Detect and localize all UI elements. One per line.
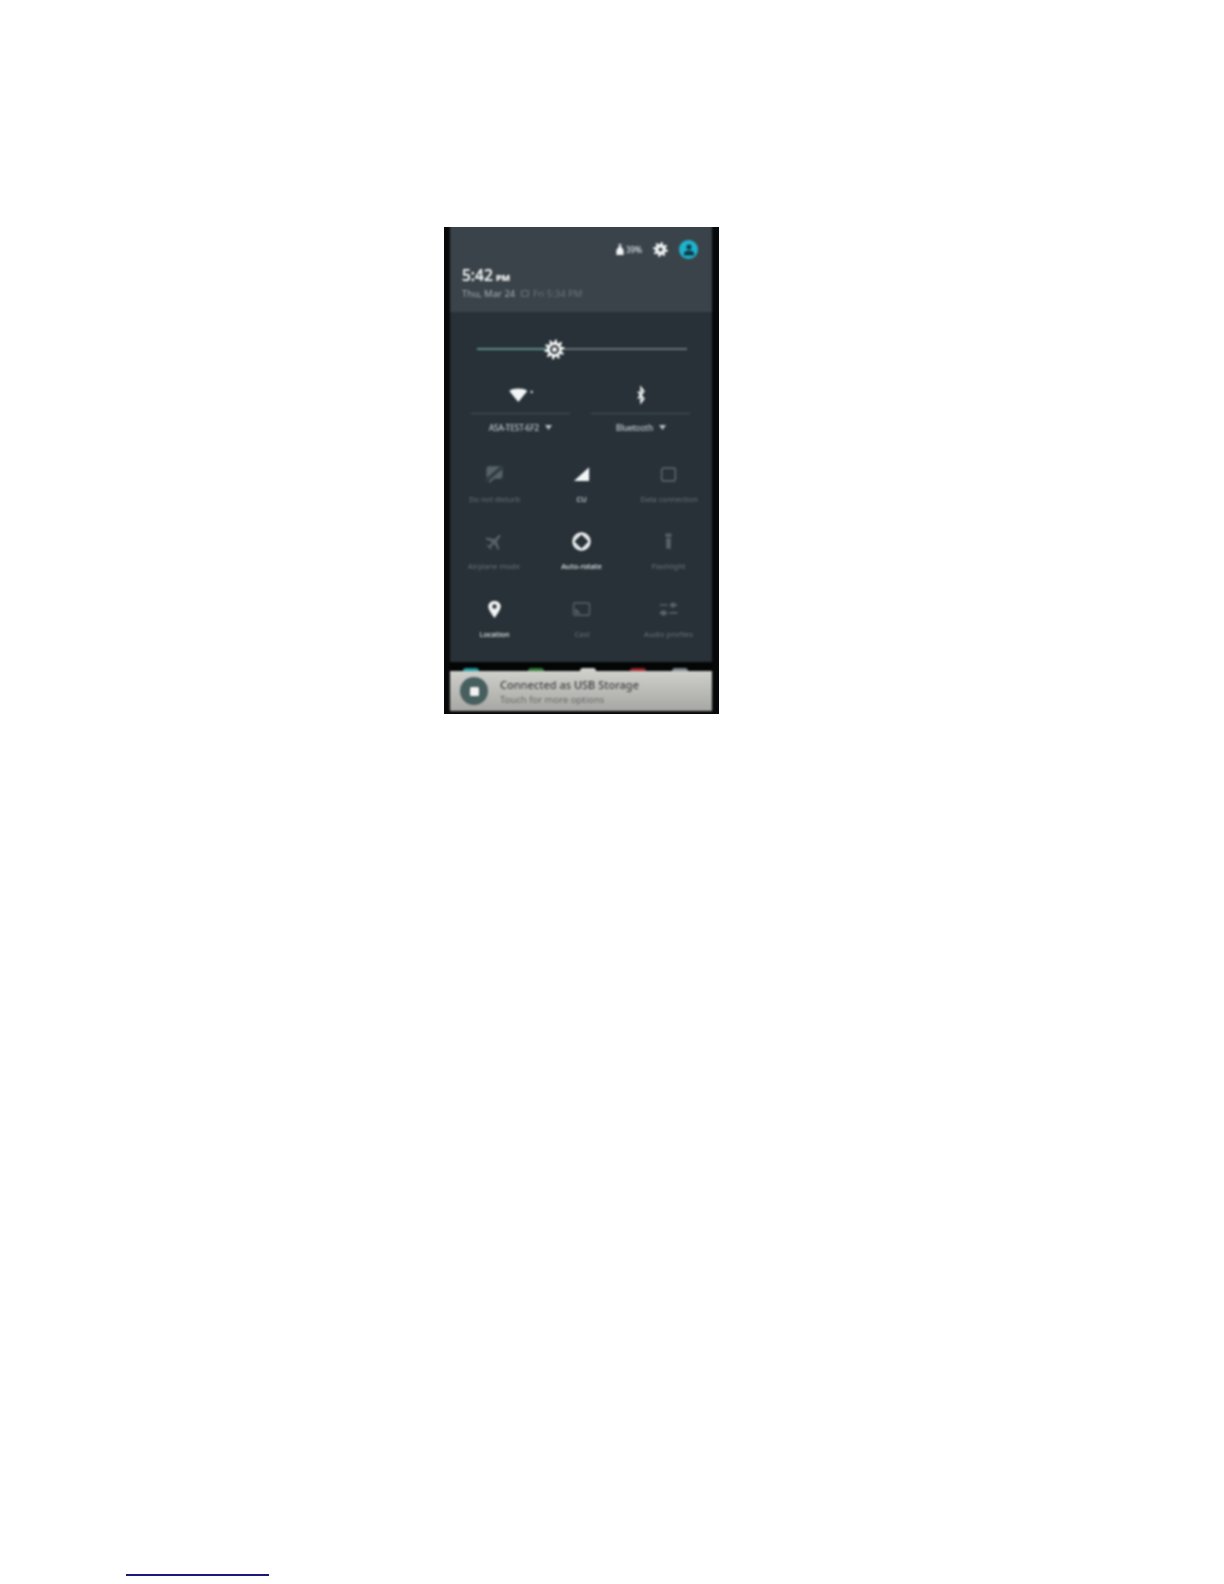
- staticText: Connected as USB Storage: [500, 677, 639, 692]
- staticText: 39%: [626, 244, 642, 255]
- button[interactable]: Audio profiles: [625, 600, 712, 639]
- button[interactable]: Data connection: [625, 465, 712, 504]
- staticText: Audio profiles: [644, 629, 693, 639]
- button[interactable]: Cast: [538, 600, 625, 639]
- staticText: Auto-rotate: [561, 561, 602, 571]
- button[interactable]: Location: [450, 600, 538, 639]
- button[interactable]: Do not disturb: [450, 465, 538, 504]
- button[interactable]: Settings: [652, 241, 669, 258]
- staticText: 5:42: [462, 264, 493, 285]
- staticText: CU: [576, 494, 587, 504]
- button[interactable]: Brightness: [450, 338, 712, 360]
- staticText: Touch for more options: [500, 693, 605, 706]
- button[interactable]: Switch user: [679, 240, 698, 259]
- button[interactable]: Wi-Fi: [450, 382, 581, 407]
- staticText: Bluetooth: [616, 422, 654, 433]
- staticText: Fri 5:34 PM: [533, 287, 583, 300]
- staticText: Flashlight: [651, 561, 686, 571]
- staticText: Cast: [574, 629, 590, 639]
- button[interactable]: Airplane mode: [450, 532, 538, 571]
- button[interactable]: Connected as USB Storage: [450, 671, 712, 711]
- button[interactable]: 5:42: [462, 264, 583, 300]
- staticText: Data connection: [640, 494, 698, 504]
- staticText: Thu, Mar 24: [462, 287, 516, 300]
- staticText: Location: [479, 629, 510, 639]
- button[interactable]: CU: [538, 465, 625, 504]
- button[interactable]: Bluetooth: [581, 382, 712, 402]
- staticText: Do not disturb: [469, 494, 520, 504]
- staticText: PM: [496, 271, 511, 283]
- staticText: ASA-TEST-6F2: [489, 422, 540, 433]
- button[interactable]: Auto-rotate: [538, 532, 625, 571]
- staticText: Airplane mode: [468, 561, 520, 571]
- button[interactable]: Flashlight: [625, 532, 712, 571]
